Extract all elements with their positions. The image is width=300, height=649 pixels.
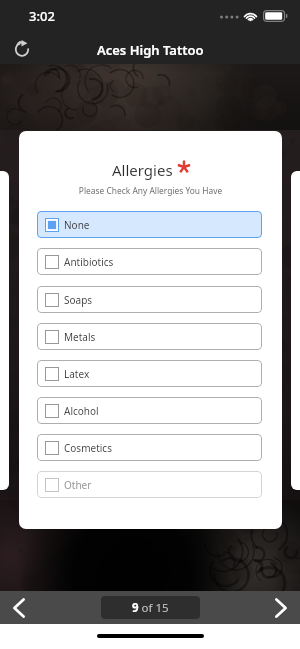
staticText: None bbox=[64, 218, 90, 232]
staticText: Cosmetics bbox=[64, 441, 112, 455]
button[interactable]: Soaps bbox=[37, 286, 262, 313]
staticText: Please Check Any Allergies You Have bbox=[19, 185, 282, 196]
staticText: 9 of 15 bbox=[132, 600, 169, 616]
staticText: Antibiotics bbox=[64, 255, 114, 269]
button[interactable]: Alcohol bbox=[37, 397, 262, 424]
staticText: Aces High Tattoo bbox=[97, 41, 204, 59]
button[interactable]: Latex bbox=[37, 360, 262, 387]
button[interactable]: Antibiotics bbox=[37, 248, 262, 275]
staticText: Alcohol bbox=[64, 404, 99, 418]
staticText: Latex bbox=[64, 367, 90, 381]
staticText: 3:02 bbox=[29, 7, 55, 25]
button[interactable]: Other bbox=[37, 471, 262, 498]
button[interactable]: Previous bbox=[0, 591, 38, 624]
button[interactable]: None bbox=[37, 211, 262, 238]
staticText: Metals bbox=[64, 330, 96, 344]
staticText: Soaps bbox=[64, 293, 93, 307]
button[interactable]: Cosmetics bbox=[37, 434, 262, 461]
staticText: Allergies bbox=[112, 160, 173, 180]
button[interactable]: Refresh bbox=[7, 34, 37, 64]
staticText: Other bbox=[64, 478, 92, 492]
button[interactable]: 9 of 15 bbox=[101, 596, 200, 619]
button[interactable]: Metals bbox=[37, 323, 262, 350]
button[interactable]: Next bbox=[262, 591, 300, 624]
